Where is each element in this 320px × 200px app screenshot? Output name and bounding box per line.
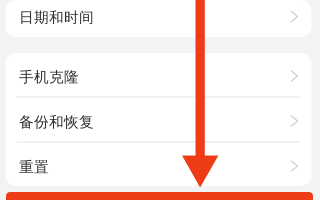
button[interactable]: 日期和时间 bbox=[5, 0, 311, 37]
staticText: 重置 bbox=[19, 158, 49, 176]
button[interactable]: 重置 bbox=[5, 142, 311, 186]
staticText: 日期和时间 bbox=[19, 8, 94, 26]
staticText: 手机克隆 bbox=[19, 68, 79, 86]
button[interactable]: 手机克隆 bbox=[5, 52, 311, 96]
button[interactable]: 备份和恢复 bbox=[5, 97, 311, 141]
staticText: 备份和恢复 bbox=[19, 113, 94, 131]
